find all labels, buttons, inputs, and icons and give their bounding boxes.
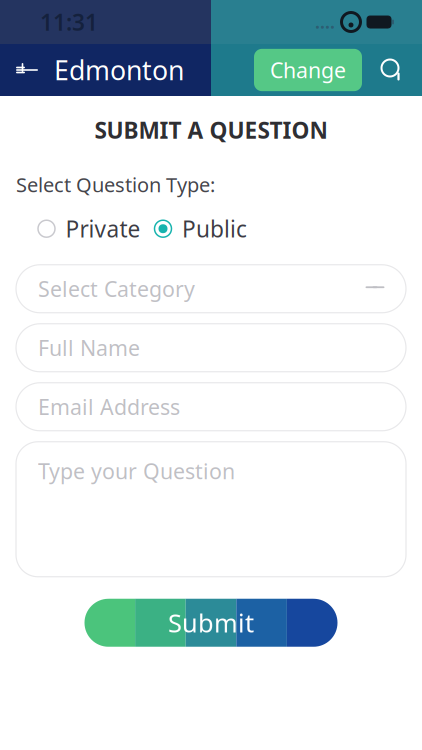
staticText: Submit bbox=[168, 606, 254, 639]
staticText: Type your Question bbox=[38, 457, 235, 485]
button[interactable]: Public bbox=[154, 210, 247, 248]
button[interactable]: Private bbox=[37, 210, 140, 248]
button[interactable]: Edmonton bbox=[44, 46, 184, 94]
staticText: Select Category bbox=[38, 275, 195, 303]
staticText: Public bbox=[182, 214, 247, 244]
staticText: Edmonton bbox=[54, 52, 184, 88]
staticText: .... bbox=[315, 10, 335, 33]
staticText: Private bbox=[65, 214, 140, 244]
staticText: Email Address bbox=[38, 393, 180, 421]
staticText: Full Name bbox=[38, 334, 140, 362]
staticText: SUBMIT A QUESTION bbox=[94, 115, 327, 145]
button[interactable]: Back bbox=[10, 53, 44, 87]
staticText: 11:31 bbox=[40, 7, 98, 37]
button[interactable]: Type your Question bbox=[16, 442, 406, 577]
button[interactable]: Search bbox=[372, 50, 412, 90]
staticText: Change bbox=[270, 56, 346, 84]
button[interactable]: Select Category bbox=[16, 265, 406, 313]
button[interactable]: Email Address bbox=[16, 383, 406, 431]
button[interactable]: Submit bbox=[84, 599, 337, 647]
button[interactable]: Change bbox=[254, 49, 362, 91]
button[interactable]: Full Name bbox=[16, 324, 406, 372]
staticText: Select Question Type: bbox=[16, 171, 215, 198]
